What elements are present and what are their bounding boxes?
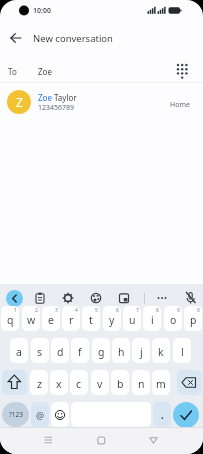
button[interactable]: d xyxy=(51,338,69,363)
staticText: r xyxy=(69,313,74,327)
staticText: 10:00 xyxy=(33,6,51,16)
staticText: Zoe xyxy=(38,66,52,77)
staticText: s xyxy=(37,345,43,359)
staticText: @ xyxy=(36,409,45,421)
button[interactable] xyxy=(143,430,163,450)
staticText: Home xyxy=(170,100,190,110)
button[interactable] xyxy=(62,292,74,304)
button[interactable]: t xyxy=(82,306,100,331)
button[interactable] xyxy=(172,61,192,81)
staticText: k xyxy=(158,345,164,359)
button[interactable]: b xyxy=(111,370,129,395)
button[interactable] xyxy=(5,30,23,48)
button[interactable]: Z xyxy=(0,87,203,117)
staticText: 7 xyxy=(136,307,139,314)
button[interactable] xyxy=(38,430,58,450)
staticText: . xyxy=(161,408,164,422)
button[interactable] xyxy=(177,370,202,395)
staticText: m xyxy=(156,377,166,391)
button[interactable]: z xyxy=(30,370,48,395)
staticText: h xyxy=(118,345,125,359)
button[interactable]: o xyxy=(164,306,182,331)
button[interactable]: h xyxy=(112,338,130,363)
staticText: 3 xyxy=(55,307,58,314)
staticText: 9 xyxy=(177,307,180,314)
button[interactable] xyxy=(90,292,102,304)
button[interactable]: v xyxy=(91,370,109,395)
staticText: w xyxy=(27,313,36,327)
staticText: New conversation xyxy=(33,32,113,45)
button[interactable] xyxy=(173,402,199,428)
button[interactable] xyxy=(118,292,130,304)
staticText: q xyxy=(7,313,14,327)
button[interactable]: . xyxy=(153,402,171,427)
staticText: Z xyxy=(16,94,23,110)
staticText: x xyxy=(56,377,62,391)
staticText: t xyxy=(89,313,93,327)
button[interactable]: c xyxy=(70,370,88,395)
staticText: 8 xyxy=(156,307,159,314)
staticText: 1 xyxy=(14,307,17,314)
staticText: j xyxy=(140,345,143,359)
button[interactable] xyxy=(2,370,27,395)
staticText: c xyxy=(76,377,82,391)
button[interactable]: a xyxy=(10,338,28,363)
button[interactable]: g xyxy=(92,338,110,363)
button[interactable]: f xyxy=(71,338,89,363)
button[interactable] xyxy=(51,402,69,427)
button[interactable] xyxy=(156,292,168,304)
button[interactable]: l xyxy=(173,338,191,363)
staticText: o xyxy=(170,313,177,327)
staticText: g xyxy=(98,345,105,359)
button[interactable]: n xyxy=(132,370,150,395)
button[interactable]: r xyxy=(62,306,80,331)
staticText: 0 xyxy=(197,307,200,314)
staticText: i xyxy=(151,313,154,327)
staticText: z xyxy=(37,377,42,391)
staticText: p xyxy=(190,313,197,327)
staticText: 2 xyxy=(35,307,38,314)
button[interactable] xyxy=(6,290,23,307)
button[interactable]: w xyxy=(22,306,40,331)
staticText: l xyxy=(181,345,184,359)
button[interactable]: p xyxy=(184,306,202,331)
button[interactable]: e xyxy=(42,306,60,331)
staticText: 123456789 xyxy=(38,103,75,113)
staticText: e xyxy=(48,313,54,327)
button[interactable]: j xyxy=(132,338,150,363)
button[interactable]: y xyxy=(103,306,121,331)
staticText: n xyxy=(138,377,145,391)
button[interactable]: m xyxy=(152,370,170,395)
button[interactable]: To xyxy=(0,58,203,82)
button[interactable]: q xyxy=(1,306,19,331)
staticText: 5 xyxy=(95,307,98,314)
staticText: ?123 xyxy=(9,410,23,419)
staticText: y xyxy=(109,313,115,327)
staticText: To xyxy=(8,66,17,77)
staticText: d xyxy=(57,345,64,359)
button[interactable]: k xyxy=(152,338,170,363)
staticText: v xyxy=(97,377,103,391)
staticText: 4 xyxy=(75,307,78,314)
staticText: a xyxy=(16,345,22,359)
button[interactable]: ?123 xyxy=(2,402,29,427)
button[interactable]: x xyxy=(50,370,68,395)
button[interactable]: i xyxy=(143,306,161,331)
staticText: u xyxy=(129,313,136,327)
button[interactable]: u xyxy=(123,306,141,331)
button[interactable] xyxy=(184,291,197,304)
staticText: f xyxy=(78,345,82,359)
button[interactable]: s xyxy=(31,338,49,363)
button[interactable]: @ xyxy=(31,402,49,427)
button[interactable] xyxy=(34,292,46,304)
staticText: 6 xyxy=(116,307,119,314)
staticText: Zoe Taylor xyxy=(38,92,77,103)
button[interactable] xyxy=(91,430,111,450)
staticText: b xyxy=(117,377,124,391)
